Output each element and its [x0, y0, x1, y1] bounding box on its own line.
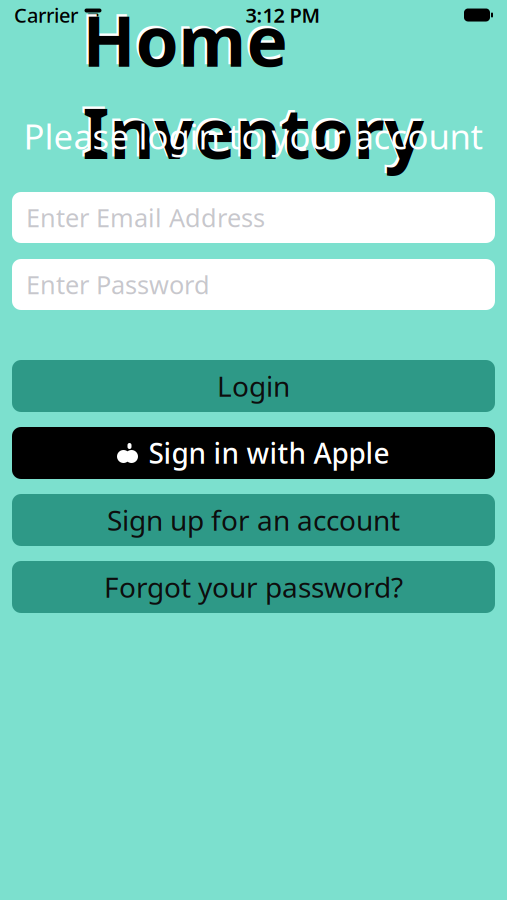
staticText: Enter Password: [26, 268, 210, 301]
button[interactable]: Forgot your password?: [12, 561, 495, 613]
staticText: Login: [217, 367, 290, 405]
staticText: Home Inventory: [82, 0, 424, 178]
staticText: Sign in with Apple: [148, 434, 389, 472]
staticText: Home Inventory: [80, 0, 422, 175]
button[interactable]: Login: [12, 360, 495, 412]
staticText: 3:12 PM: [245, 2, 320, 28]
staticText: Sign up for an account: [107, 501, 400, 539]
button[interactable]: Sign up for an account: [12, 494, 495, 546]
staticText: Enter Email Address: [26, 201, 265, 234]
staticText: Carrier: [14, 2, 78, 28]
staticText: Please login to your account: [23, 113, 483, 159]
button[interactable]: Sign in with Apple: [12, 427, 495, 479]
staticText: Forgot your password?: [104, 568, 403, 606]
